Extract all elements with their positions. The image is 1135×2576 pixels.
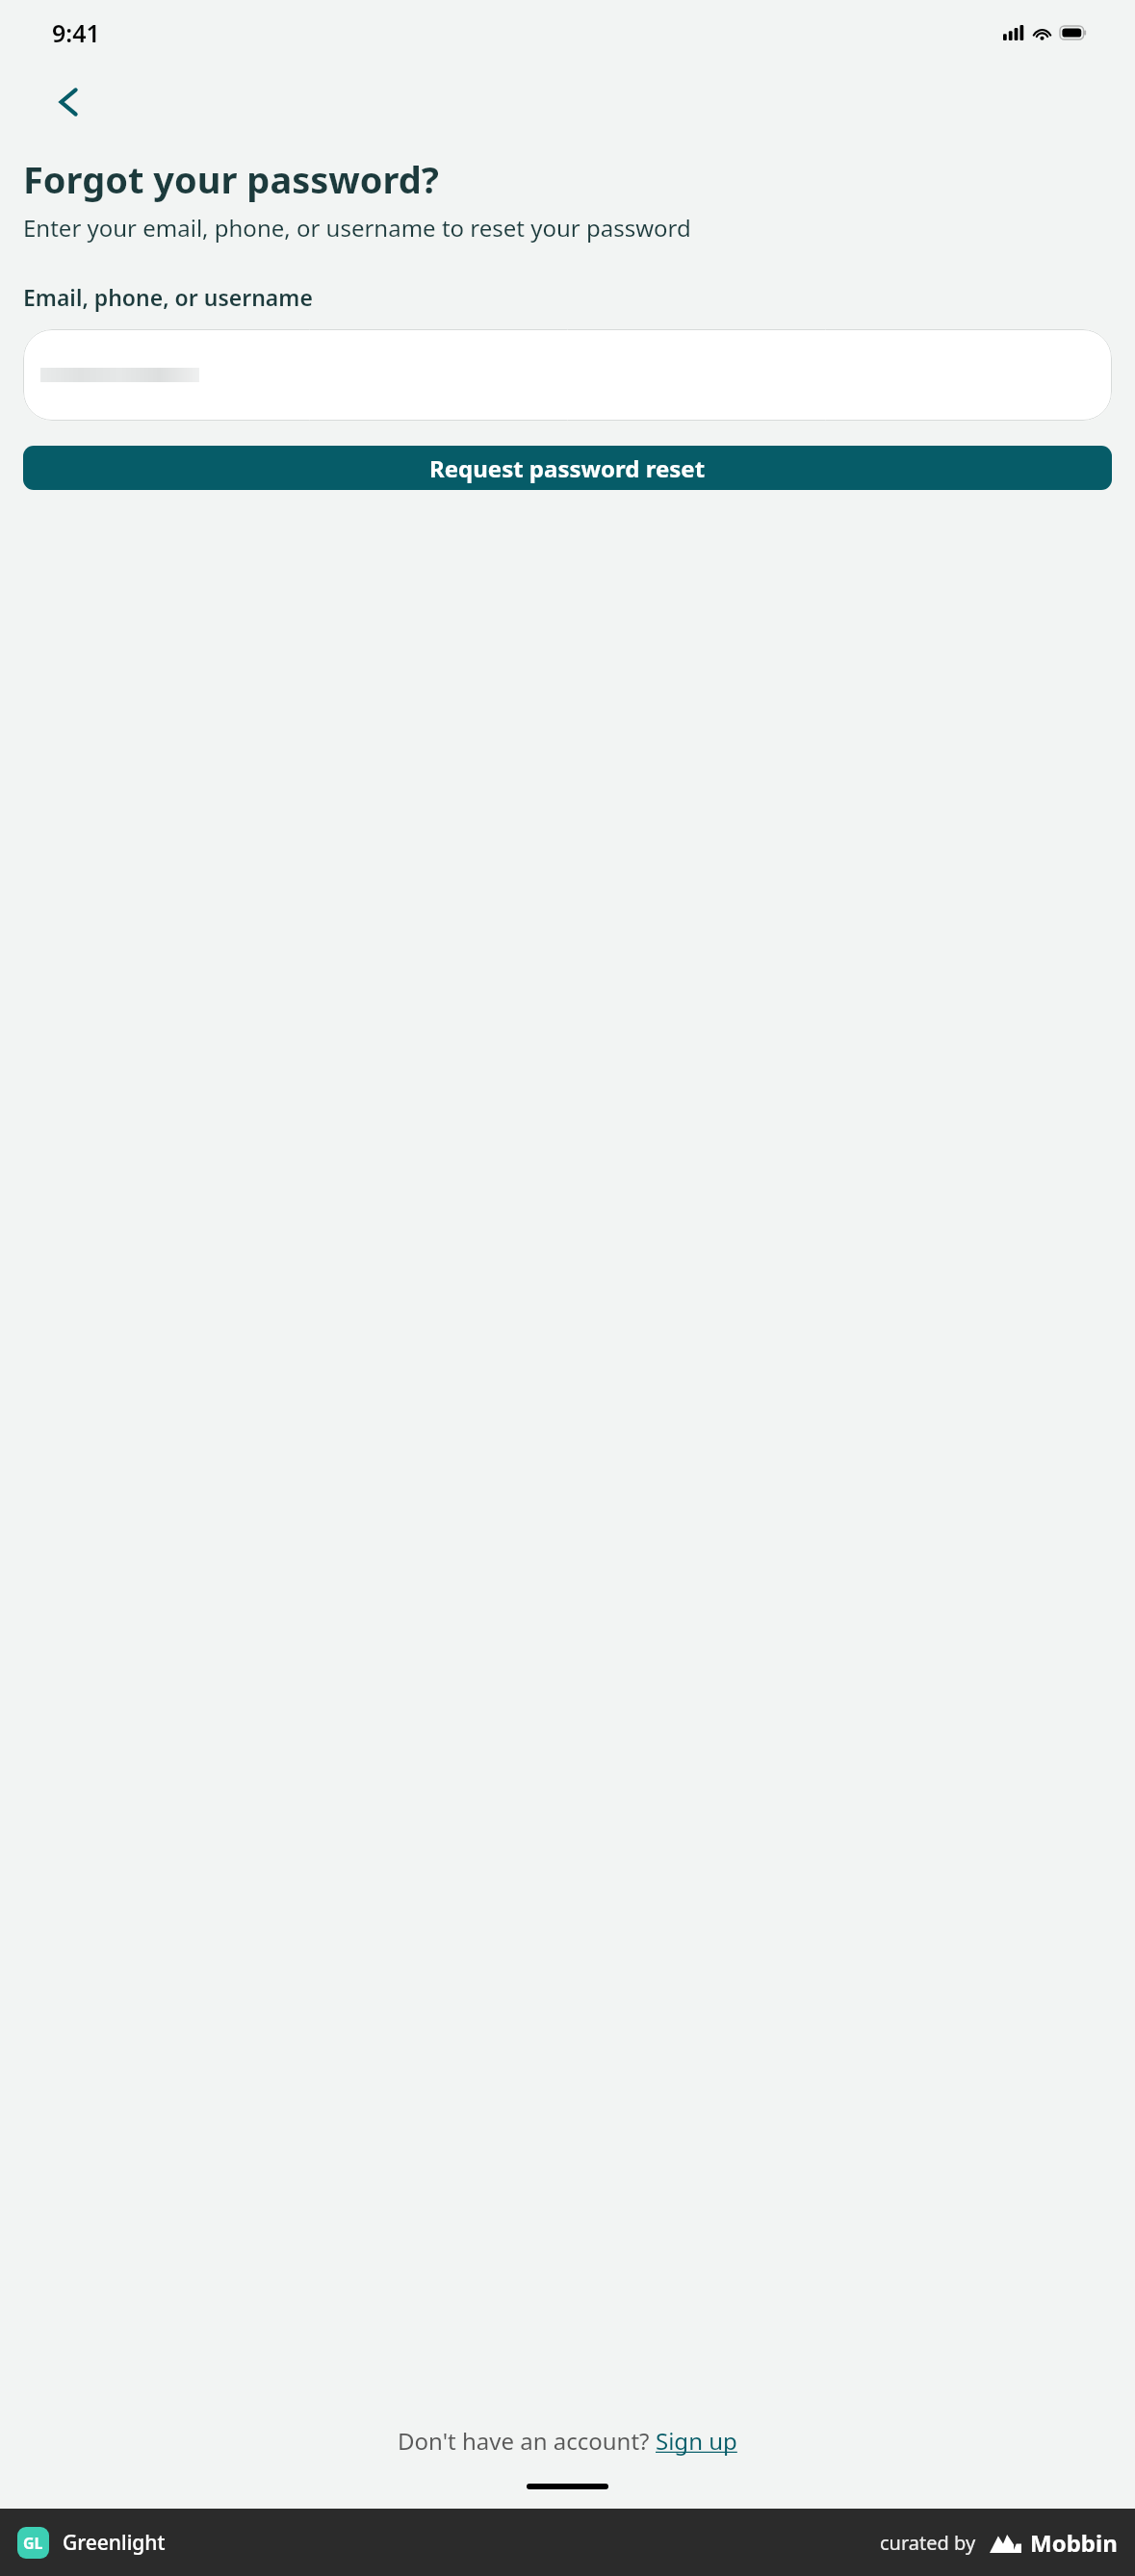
button[interactable]: Sign up xyxy=(656,2425,737,2457)
staticText: Email, phone, or username xyxy=(23,282,313,312)
staticText: Request password reset xyxy=(429,452,706,484)
staticText: curated by xyxy=(880,2530,976,2556)
staticText: GL xyxy=(23,2533,43,2554)
staticText: Don't have an account? xyxy=(398,2425,656,2457)
button[interactable]: Back xyxy=(39,71,100,133)
staticText: Sign up xyxy=(656,2425,737,2457)
staticText: Forgot your password? xyxy=(23,154,439,204)
button[interactable]: Request password reset xyxy=(23,446,1112,490)
staticText: 9:41 xyxy=(52,16,100,49)
staticText: Mobbin xyxy=(1030,2527,1118,2559)
button[interactable] xyxy=(23,329,1112,421)
staticText: Greenlight xyxy=(63,2529,166,2557)
staticText: Enter your email, phone, or username to … xyxy=(23,212,691,244)
